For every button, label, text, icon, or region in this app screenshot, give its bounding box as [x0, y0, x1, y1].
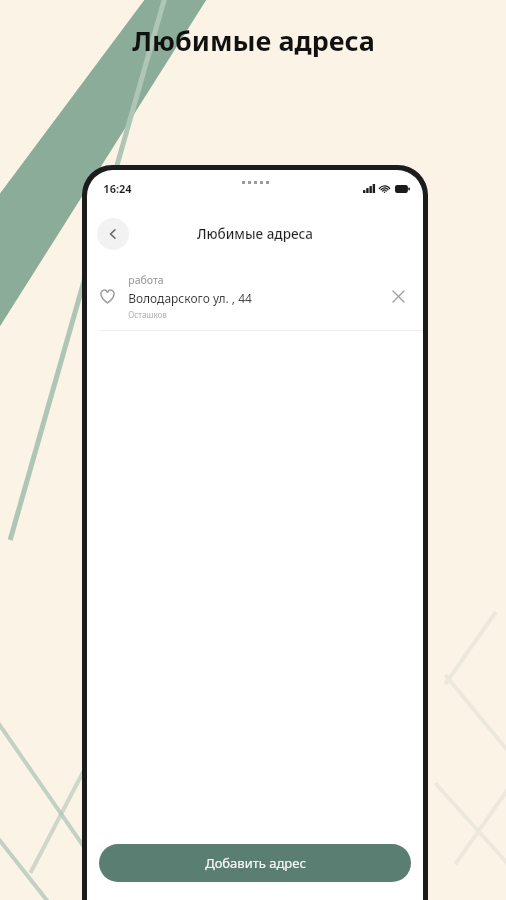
staticText: Любимые адреса — [132, 22, 375, 59]
staticText: 16:24 — [103, 181, 132, 196]
button[interactable]: Назад — [97, 218, 129, 250]
button[interactable]: Добавить адрес — [99, 844, 411, 882]
staticText: Осташков — [128, 309, 167, 320]
staticText: Володарского ул. , 44 — [128, 290, 252, 306]
staticText: Добавить адрес — [205, 854, 306, 872]
staticText: работа — [128, 273, 164, 287]
staticText: Любимые адреса — [197, 225, 313, 243]
button[interactable]: Удалить — [385, 283, 411, 309]
button[interactable]: работа — [87, 262, 423, 330]
